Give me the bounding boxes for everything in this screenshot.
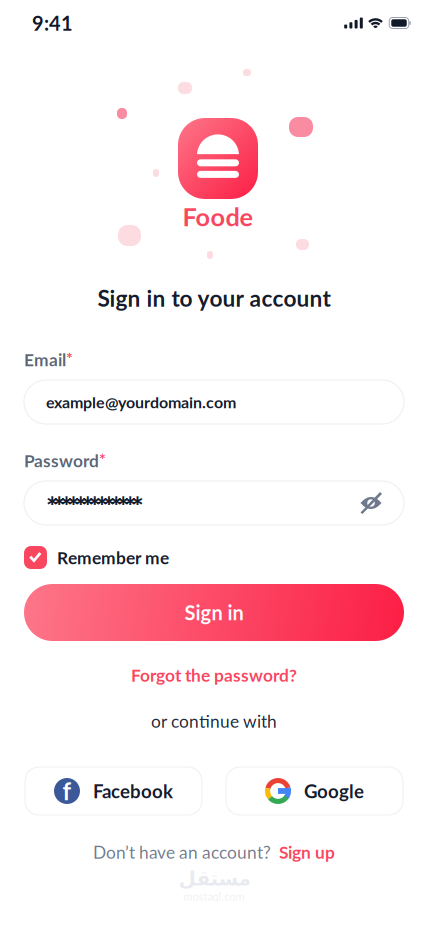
staticText: Email <box>24 349 66 370</box>
staticText: Forgot the password? <box>131 665 297 685</box>
staticText: * <box>99 449 106 468</box>
staticText: Sign in <box>184 600 243 624</box>
staticText: Sign up <box>279 842 335 862</box>
staticText: Facebook <box>93 780 173 802</box>
button[interactable]: Remember me <box>24 546 47 569</box>
staticText: * <box>66 348 73 367</box>
staticText: example@yourdomain.com <box>46 392 236 412</box>
button[interactable]: Sign up <box>279 842 335 862</box>
staticText: Remember me <box>57 547 169 568</box>
button[interactable]: Forgot the password? <box>131 664 297 686</box>
button[interactable]: Google <box>226 767 403 815</box>
staticText: Password <box>24 450 99 471</box>
staticText: Foode <box>182 201 253 232</box>
staticText: Google <box>304 780 364 802</box>
staticText: 9:41 <box>32 11 73 35</box>
staticText: or continue with <box>151 711 277 731</box>
staticText: f <box>62 777 71 805</box>
staticText: Sign in to your account <box>97 284 330 312</box>
button[interactable]: f <box>25 767 202 815</box>
button[interactable]: Sign in <box>24 584 404 641</box>
staticText: ************* <box>46 488 143 524</box>
staticText: mostaql.com <box>183 890 244 903</box>
staticText: Don’t have an account? <box>93 842 271 862</box>
staticText: مستقل <box>178 867 250 890</box>
